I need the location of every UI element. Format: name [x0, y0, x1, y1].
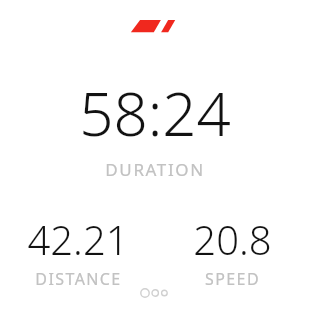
staticText: 42.21 — [27, 212, 129, 266]
staticText: DURATION — [105, 158, 205, 181]
button[interactable]: 58:24 — [0, 72, 310, 181]
button[interactable]: 20.8 — [193, 212, 272, 290]
staticText: 20.8 — [193, 212, 272, 266]
staticText: 58:24 — [79, 72, 231, 154]
button[interactable]: 42.21 — [27, 212, 129, 290]
staticText: SPEED — [205, 268, 260, 290]
staticText: DISTANCE — [35, 268, 122, 290]
button[interactable]: Page indicator — [140, 288, 170, 298]
other: App logo — [133, 16, 177, 34]
